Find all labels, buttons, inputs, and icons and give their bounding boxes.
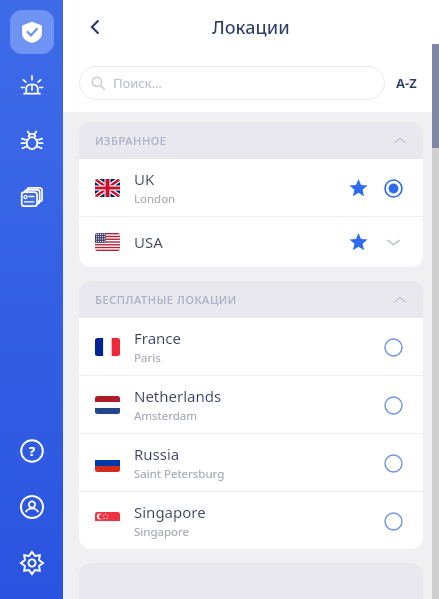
button[interactable]: UK: [79, 159, 423, 216]
button[interactable]: Select: [379, 507, 407, 535]
button[interactable]: France: [79, 318, 423, 375]
button[interactable]: Alerts: [10, 65, 54, 109]
button[interactable]: Russia: [79, 434, 423, 491]
staticText: France: [134, 328, 182, 348]
button[interactable]: Поиск...: [79, 66, 385, 100]
button[interactable]: A-Z: [385, 66, 427, 100]
staticText: Russia: [134, 444, 180, 464]
staticText: БЕСПЛАТНЫЕ ЛОКАЦИИ: [95, 292, 393, 307]
staticText: Singapore: [134, 502, 206, 522]
button[interactable]: Settings: [10, 541, 54, 585]
button[interactable]: Back: [77, 9, 113, 45]
button[interactable]: Select: [379, 174, 407, 202]
button[interactable]: Select: [379, 391, 407, 419]
staticText: Netherlands: [134, 386, 222, 406]
staticText: Локации: [212, 15, 290, 40]
staticText: UK: [134, 169, 155, 189]
button[interactable]: БЕСПЛАТНЫЕ ЛОКАЦИИ: [79, 281, 423, 318]
staticText: London: [134, 191, 176, 207]
staticText: ?: [29, 442, 36, 460]
staticText: Поиск...: [113, 74, 163, 92]
staticText: ИЗБРАННОЕ: [95, 133, 393, 148]
button[interactable]: Select: [379, 333, 407, 361]
staticText: Saint Petersburg: [134, 466, 225, 482]
button[interactable]: ИЗБРАННОЕ: [79, 122, 423, 159]
button[interactable]: Help: [10, 429, 54, 473]
button[interactable]: Favorite: [343, 227, 373, 257]
button[interactable]: Singapore: [79, 492, 423, 549]
staticText: Amsterdam: [134, 408, 198, 424]
staticText: Singapore: [134, 524, 189, 540]
button[interactable]: Protection: [10, 10, 54, 54]
button[interactable]: Account: [10, 485, 54, 529]
staticText: USA: [134, 232, 163, 252]
staticText: Paris: [134, 350, 161, 366]
button[interactable]: Cards: [10, 175, 54, 219]
button[interactable]: Bug: [10, 120, 54, 164]
button[interactable]: USA: [79, 217, 423, 267]
button[interactable]: Select: [379, 449, 407, 477]
button[interactable]: Favorite: [343, 173, 373, 203]
button[interactable]: Netherlands: [79, 376, 423, 433]
button[interactable]: Expand: [379, 228, 407, 256]
staticText: A-Z: [396, 74, 417, 92]
